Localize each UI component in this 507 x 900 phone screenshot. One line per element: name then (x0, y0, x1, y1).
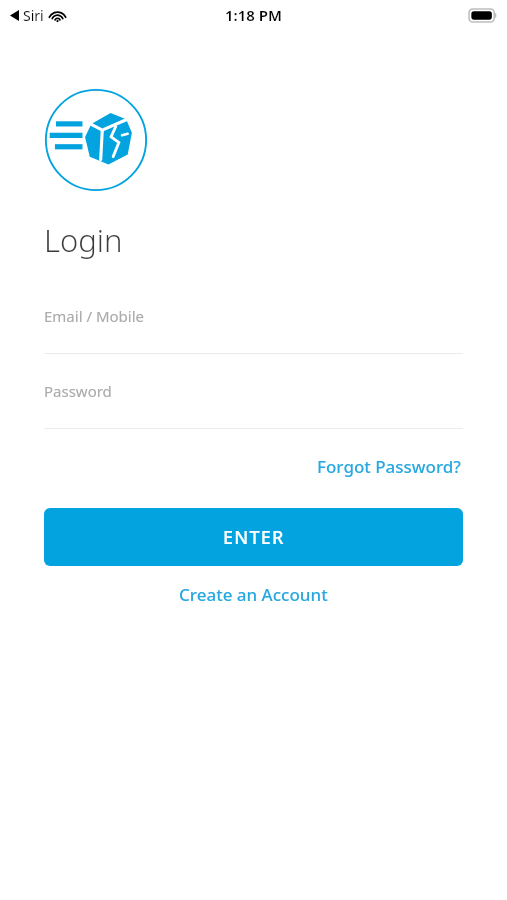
button[interactable]: Forgot Password? (315, 451, 463, 482)
staticText: Create an Account (179, 583, 328, 606)
button[interactable]: Password (44, 381, 463, 429)
staticText: ENTER (223, 525, 285, 550)
staticText: Login (44, 219, 123, 261)
staticText: Password (44, 381, 112, 401)
button[interactable]: Email / Mobile (44, 306, 463, 354)
staticText: Email / Mobile (44, 306, 145, 326)
button[interactable]: Create an Account (171, 577, 336, 612)
staticText: Forgot Password? (317, 455, 461, 478)
staticText: Siri (23, 6, 44, 25)
staticText: 1:18 PM (225, 5, 282, 25)
button[interactable]: ENTER (44, 508, 463, 566)
